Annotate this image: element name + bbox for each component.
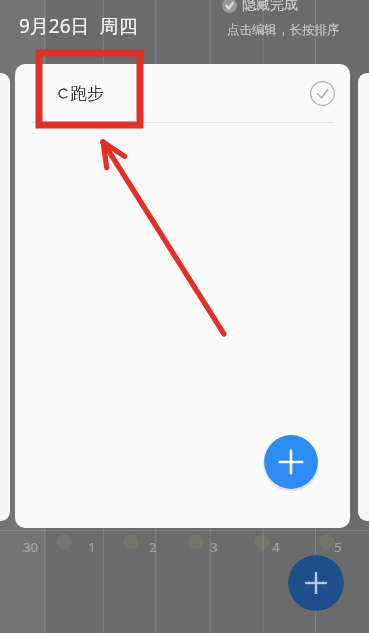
button[interactable]: 跑步 <box>15 64 350 122</box>
staticText: 30 <box>23 538 38 556</box>
button[interactable]: 标记完成 <box>305 76 339 110</box>
button[interactable]: 1 <box>61 538 122 556</box>
staticText: 跑步 <box>70 83 104 104</box>
other: 隐藏完成 <box>222 0 237 13</box>
staticText: 2 <box>149 538 157 556</box>
staticText: 1 <box>88 538 96 556</box>
staticText: 9月26日 周四 <box>19 13 138 39</box>
button[interactable]: 新建 <box>287 554 345 612</box>
button[interactable] <box>0 73 10 521</box>
staticText: 4 <box>272 538 280 556</box>
staticText: 5 <box>334 538 342 556</box>
button[interactable]: 添加 <box>263 434 319 490</box>
button[interactable]: 隐藏完成 <box>222 0 298 14</box>
button[interactable]: 5 <box>307 538 369 556</box>
button[interactable]: 3 <box>183 538 245 556</box>
staticText: 隐藏完成 <box>242 0 298 14</box>
staticText: 3 <box>210 538 218 556</box>
button[interactable]: 30 <box>0 538 61 556</box>
button[interactable] <box>358 73 369 521</box>
staticText: 点击编辑，长按排序 <box>227 22 340 38</box>
button[interactable]: 2 <box>122 538 183 556</box>
button[interactable]: 4 <box>245 538 307 556</box>
